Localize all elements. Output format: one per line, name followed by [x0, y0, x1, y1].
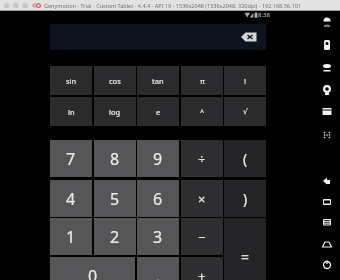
staticText: !	[244, 76, 247, 86]
button[interactable]: log	[94, 97, 136, 126]
button[interactable]: 7	[50, 140, 92, 177]
button[interactable]: 6	[137, 180, 179, 217]
staticText: Genymotion - Trial - Custom Tablet - 4.4…	[44, 2, 301, 9]
staticText: 0	[88, 265, 98, 280]
button[interactable]: 4	[50, 180, 92, 217]
staticText: π	[200, 76, 205, 86]
button[interactable]: √	[224, 97, 266, 126]
staticText: 7	[66, 148, 76, 170]
staticText: 8:38	[258, 11, 270, 19]
button[interactable]: +	[181, 257, 223, 280]
button[interactable]: 9	[137, 140, 179, 177]
button[interactable]: sin	[50, 66, 92, 95]
staticText: −	[198, 228, 206, 246]
staticText: log	[109, 107, 121, 117]
staticText: √	[243, 107, 248, 116]
staticText: ÷	[198, 150, 206, 168]
staticText: 1	[66, 226, 76, 248]
button[interactable]: =	[224, 218, 266, 280]
staticText: 8	[110, 148, 120, 170]
staticText: 4	[66, 188, 76, 210]
button[interactable]: 8	[94, 140, 136, 177]
button[interactable]: cos	[94, 66, 136, 95]
button[interactable]: (	[224, 140, 266, 177]
staticText: e	[156, 107, 161, 117]
button[interactable]: !	[224, 66, 266, 95]
staticText: cos	[109, 76, 121, 86]
staticText: 6	[153, 188, 163, 210]
button[interactable]: π	[181, 66, 223, 95]
staticText: 3	[153, 226, 163, 248]
button[interactable]: e	[137, 97, 179, 126]
staticText: =	[241, 247, 250, 266]
button[interactable]: 0	[50, 257, 135, 280]
staticText: 9	[153, 148, 163, 170]
staticText: +	[198, 267, 206, 280]
button[interactable]: ×	[181, 180, 223, 217]
button[interactable]	[241, 32, 258, 42]
staticText: .	[156, 265, 161, 280]
staticText: 2	[110, 226, 120, 248]
button[interactable]: ÷	[181, 140, 223, 177]
button[interactable]: ln	[50, 97, 92, 126]
staticText: )	[243, 189, 248, 208]
button[interactable]: 3	[137, 218, 179, 255]
staticText: ln	[68, 107, 75, 117]
button[interactable]: tan	[137, 66, 179, 95]
button[interactable]: −	[181, 218, 223, 255]
staticText: sin	[66, 76, 77, 86]
staticText: tan	[152, 76, 164, 86]
button[interactable]: 2	[94, 218, 136, 255]
button[interactable]: 5	[94, 180, 136, 217]
staticText: (	[243, 149, 248, 168]
button[interactable]: ^	[181, 97, 223, 126]
button[interactable]: 1	[50, 218, 92, 255]
button[interactable]: )	[224, 180, 266, 217]
staticText: ^	[200, 107, 205, 117]
staticText: 5	[110, 188, 120, 210]
staticText: ×	[198, 190, 206, 208]
